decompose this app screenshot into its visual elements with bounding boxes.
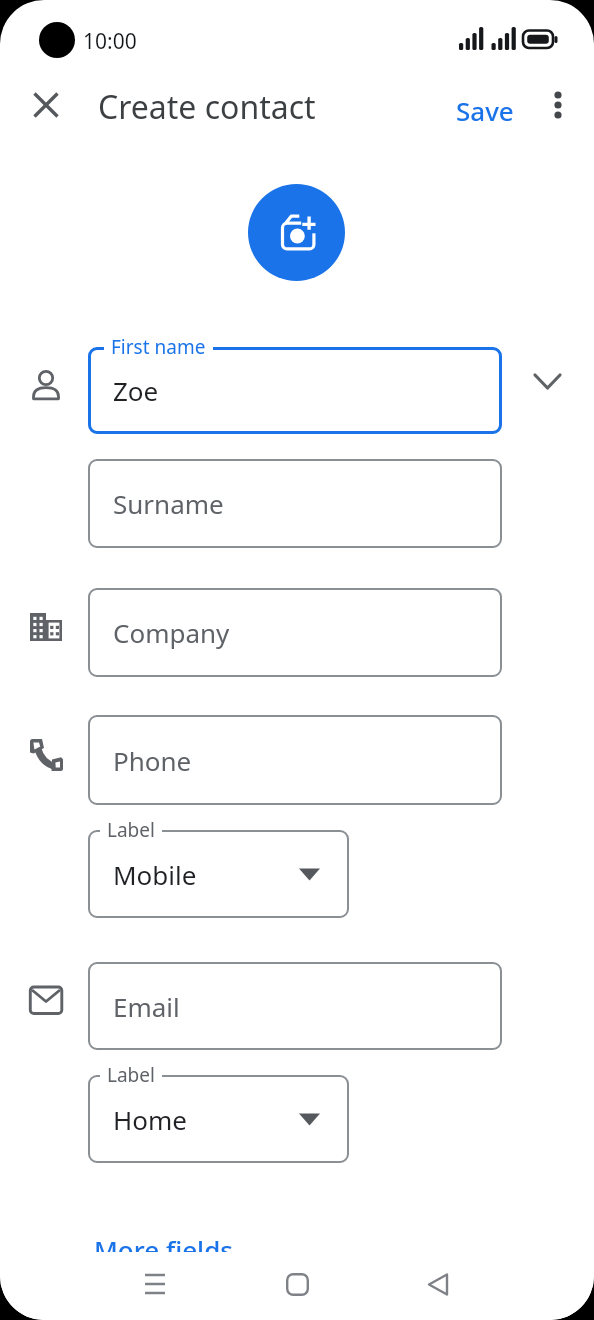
- button[interactable]: [24, 83, 68, 127]
- staticText: Mobile: [113, 857, 197, 892]
- button[interactable]: Home: [88, 1075, 349, 1163]
- button[interactable]: [414, 1260, 462, 1308]
- button[interactable]: Email: [88, 962, 502, 1050]
- button[interactable]: Company: [88, 588, 502, 677]
- button[interactable]: Zoe: [88, 347, 502, 434]
- button[interactable]: Save: [448, 85, 522, 136]
- staticText: Home: [113, 1102, 187, 1137]
- button[interactable]: Mobile: [88, 830, 349, 918]
- staticText: Save: [456, 93, 514, 128]
- staticText: Phone: [113, 743, 192, 778]
- staticText: Label: [107, 1062, 155, 1088]
- staticText: First name: [111, 334, 206, 360]
- button[interactable]: [536, 83, 580, 127]
- staticText: Create contact: [98, 85, 316, 129]
- button[interactable]: Surname: [88, 459, 502, 548]
- staticText: Zoe: [113, 373, 159, 408]
- staticText: Email: [113, 989, 180, 1024]
- button[interactable]: [273, 1260, 321, 1308]
- button[interactable]: More fields: [86, 1224, 241, 1275]
- button[interactable]: [248, 184, 345, 281]
- staticText: 10:00: [83, 27, 137, 56]
- staticText: Company: [113, 615, 230, 650]
- staticText: Label: [107, 817, 155, 843]
- staticText: Surname: [113, 486, 224, 521]
- staticText: More fields: [94, 1232, 233, 1267]
- button[interactable]: [131, 1260, 179, 1308]
- button[interactable]: Phone: [88, 715, 502, 805]
